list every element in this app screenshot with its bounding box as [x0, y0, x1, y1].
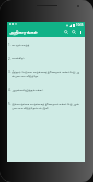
staticText: 5.: [8, 102, 12, 106]
staticText: 4.: [8, 88, 12, 92]
staticText: கடவுள் வாழ்த்: [12, 43, 30, 47]
staticText: அறன்வலியுறுத்தல் மக்கட்: [12, 88, 44, 92]
button[interactable]: Search: [62, 28, 70, 36]
staticText: ன்புடைமை விருந்தோ: [12, 74, 39, 78]
staticText: 1.: [8, 43, 12, 47]
button[interactable]: 2.: [8, 53, 84, 66]
staticText: நீத்தார் பெருமை வாழ்க்கைத் துணைநலம் மக்க…: [12, 70, 79, 74]
staticText: புடைமை விருந்தோம்பல் இனி: [12, 106, 49, 110]
staticText: இல்வாழ்க்கை வாழ்க்கைத் துணைநலம் மக்கட்பே…: [12, 102, 79, 106]
button[interactable]: Find: [70, 28, 78, 36]
staticText: 10:35: [76, 23, 84, 27]
staticText: அதிகாரங்கள்: [9, 30, 38, 35]
staticText: 3.: [8, 70, 12, 74]
button[interactable]: 1.: [8, 39, 84, 53]
staticText: வான்சிறப்: [12, 57, 25, 60]
staticText: 2.: [8, 57, 12, 61]
button[interactable]: 5.: [8, 98, 84, 116]
button[interactable]: 3.: [8, 66, 84, 84]
button[interactable]: More options: [78, 30, 83, 35]
button[interactable]: 4.: [8, 84, 84, 98]
